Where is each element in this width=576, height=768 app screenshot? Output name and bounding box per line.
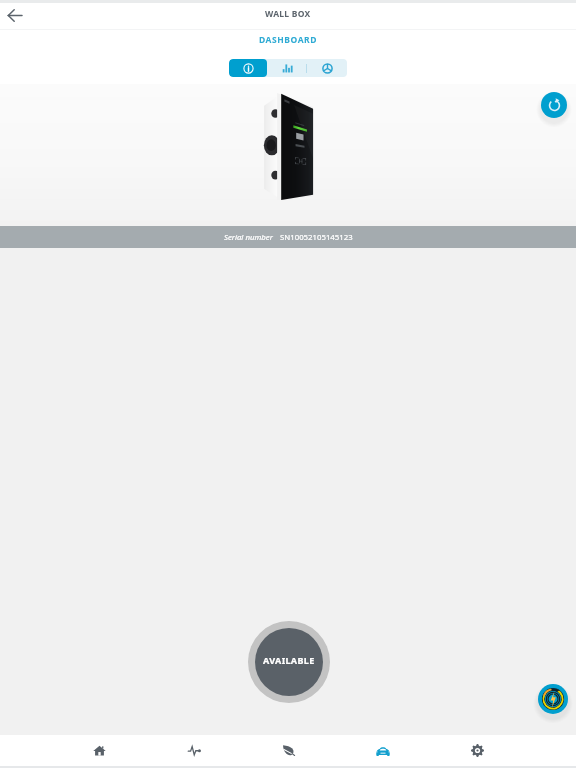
button[interactable]: Activity (147, 735, 241, 766)
button[interactable]: Refresh (541, 92, 567, 118)
staticText: AVAILABLE (263, 654, 315, 666)
button[interactable]: Chart (307, 59, 347, 77)
staticText: DASHBOARD (259, 34, 317, 46)
button[interactable]: Start charging (538, 684, 568, 714)
staticText: WALL BOX (265, 8, 311, 20)
button[interactable]: Home (52, 735, 146, 766)
button[interactable]: Vehicle (336, 735, 430, 766)
button[interactable]: Back (1, 2, 27, 28)
button[interactable]: Settings (430, 735, 524, 766)
button[interactable]: AVAILABLE (255, 628, 323, 696)
staticText: SN10052105145123 (280, 232, 353, 243)
button[interactable]: Statistics (267, 59, 306, 77)
button[interactable]: Eco (241, 735, 335, 766)
button[interactable]: Info (229, 59, 267, 77)
staticText: Serial number (224, 232, 273, 243)
